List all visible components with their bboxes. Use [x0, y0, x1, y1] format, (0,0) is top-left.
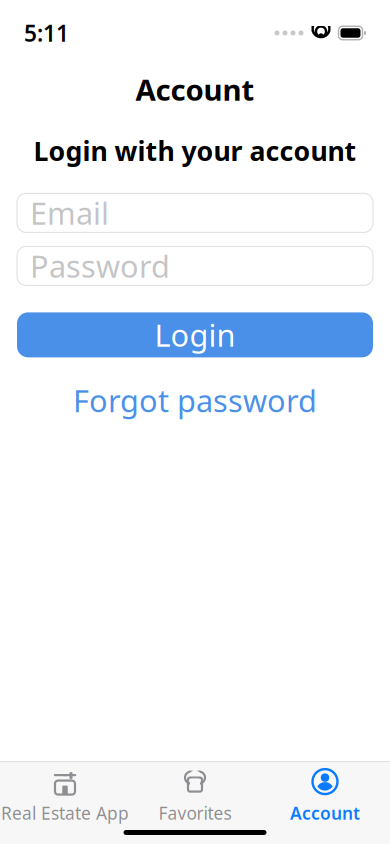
button[interactable]: Login: [17, 312, 373, 357]
staticText: Login with your account: [33, 133, 356, 168]
staticText: Email: [30, 192, 109, 233]
button[interactable]: Forgot password: [17, 379, 373, 421]
staticText: Login: [154, 314, 235, 355]
staticText: Password: [30, 245, 170, 286]
button[interactable]: Favorites: [130, 771, 260, 821]
staticText: Real Estate App: [1, 802, 129, 825]
staticText: Forgot password: [73, 380, 317, 421]
button[interactable]: Account: [260, 771, 390, 821]
staticText: Account: [290, 802, 360, 825]
button[interactable]: Real Estate App: [0, 771, 130, 821]
staticText: Account: [135, 70, 254, 109]
staticText: 5:11: [24, 18, 69, 48]
staticText: Favorites: [158, 802, 231, 825]
